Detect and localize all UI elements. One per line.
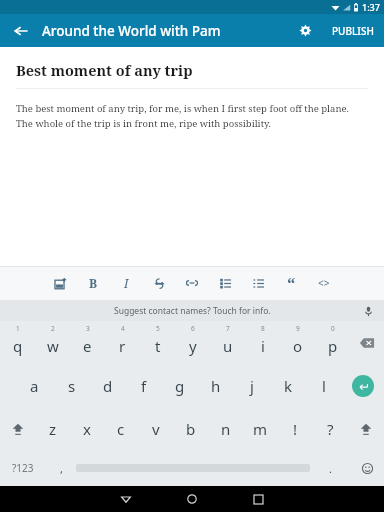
staticText: 3 bbox=[86, 324, 90, 333]
staticText: x bbox=[83, 419, 91, 439]
button[interactable]: 5 bbox=[140, 321, 175, 364]
staticText: 9 bbox=[296, 324, 300, 333]
button[interactable]: Shift bbox=[348, 407, 384, 450]
button[interactable]: Enter bbox=[342, 364, 384, 407]
button[interactable]: . bbox=[310, 450, 350, 486]
button[interactable]: g bbox=[162, 364, 198, 407]
button[interactable]: k bbox=[270, 364, 306, 407]
button[interactable]: j bbox=[234, 364, 270, 407]
staticText: d bbox=[103, 376, 113, 396]
button[interactable]: Link bbox=[180, 271, 204, 295]
button[interactable]: PUBLISH bbox=[322, 14, 384, 47]
staticText: v bbox=[152, 419, 160, 439]
button[interactable]: v bbox=[138, 407, 173, 450]
button[interactable]: Back bbox=[104, 486, 148, 512]
staticText: 6 bbox=[191, 324, 195, 333]
button[interactable]: Voice input bbox=[360, 303, 376, 319]
staticText: t bbox=[155, 336, 161, 356]
button[interactable]: Delete bbox=[350, 321, 384, 364]
button[interactable]: Numbered list bbox=[246, 271, 270, 295]
button[interactable]: d bbox=[90, 364, 126, 407]
button[interactable]: c bbox=[104, 407, 138, 450]
button[interactable]: b bbox=[173, 407, 208, 450]
staticText: f bbox=[141, 376, 147, 396]
staticText: 1 bbox=[16, 324, 20, 333]
staticText: m bbox=[253, 419, 268, 439]
button[interactable]: Shift bbox=[0, 407, 36, 450]
button[interactable]: ? bbox=[313, 407, 348, 450]
button[interactable]: 6 bbox=[175, 321, 210, 364]
button[interactable]: 8 bbox=[245, 321, 280, 364]
staticText: w bbox=[47, 336, 59, 356]
staticText: l bbox=[322, 376, 326, 396]
button[interactable]: Strikethrough bbox=[147, 271, 171, 295]
button[interactable]: , bbox=[46, 450, 76, 486]
button[interactable]: a bbox=[16, 364, 53, 407]
button[interactable]: Best moment of any trip bbox=[16, 60, 193, 80]
button[interactable]: Home bbox=[170, 486, 214, 512]
button[interactable]: h bbox=[198, 364, 234, 407]
staticText: 5 bbox=[156, 324, 160, 333]
button[interactable]: Space bbox=[76, 450, 310, 486]
staticText: e bbox=[83, 336, 92, 356]
button[interactable]: Add image bbox=[48, 271, 72, 295]
staticText: , bbox=[60, 461, 63, 476]
button[interactable]: 4 bbox=[105, 321, 140, 364]
button[interactable]: Recent apps bbox=[236, 486, 280, 512]
staticText: p bbox=[328, 336, 338, 356]
staticText: z bbox=[49, 419, 57, 439]
staticText: h bbox=[211, 376, 221, 396]
staticText: c bbox=[117, 419, 125, 439]
staticText: ? bbox=[327, 419, 334, 439]
staticText: n bbox=[221, 419, 231, 439]
staticText: I bbox=[124, 275, 129, 291]
staticText: 8 bbox=[261, 324, 265, 333]
button[interactable]: 3 bbox=[70, 321, 105, 364]
staticText: ! bbox=[293, 419, 298, 439]
button[interactable]: The best moment of any trip, for me, is … bbox=[16, 102, 368, 130]
button[interactable]: 7 bbox=[210, 321, 245, 364]
button[interactable]: x bbox=[70, 407, 104, 450]
button[interactable]: 9 bbox=[280, 321, 315, 364]
staticText: B bbox=[89, 275, 98, 291]
button[interactable]: Suggest contact names? Touch for info. bbox=[114, 305, 271, 317]
staticText: ?123 bbox=[12, 461, 34, 475]
button[interactable]: n bbox=[208, 407, 243, 450]
staticText: o bbox=[293, 336, 303, 356]
button[interactable]: s bbox=[53, 364, 90, 407]
staticText: Around the World with Pam bbox=[42, 22, 221, 40]
button[interactable]: f bbox=[126, 364, 162, 407]
staticText: g bbox=[175, 376, 185, 396]
staticText: 0 bbox=[331, 324, 335, 333]
button[interactable]: ?123 bbox=[0, 450, 46, 486]
button[interactable]: Quote bbox=[279, 271, 303, 295]
button[interactable]: l bbox=[306, 364, 342, 407]
staticText: 1:37 bbox=[362, 1, 380, 13]
button[interactable]: Bulleted list bbox=[213, 271, 237, 295]
button[interactable]: Italic bbox=[114, 271, 138, 295]
button[interactable]: Bold bbox=[81, 271, 105, 295]
staticText: j bbox=[250, 376, 254, 396]
staticText: <> bbox=[318, 276, 330, 290]
staticText: b bbox=[186, 419, 196, 439]
button[interactable]: Emoji bbox=[350, 450, 384, 486]
staticText: s bbox=[68, 376, 76, 396]
staticText: 2 bbox=[51, 324, 55, 333]
button[interactable]: m bbox=[243, 407, 278, 450]
staticText: 7 bbox=[226, 324, 230, 333]
staticText: i bbox=[261, 336, 265, 356]
button[interactable]: 2 bbox=[35, 321, 70, 364]
staticText: PUBLISH bbox=[332, 24, 374, 38]
button[interactable]: ! bbox=[278, 407, 313, 450]
button[interactable]: 0 bbox=[315, 321, 350, 364]
staticText: q bbox=[13, 336, 23, 356]
button[interactable]: z bbox=[36, 407, 70, 450]
staticText: r bbox=[119, 336, 126, 356]
button[interactable]: Settings bbox=[288, 14, 322, 47]
button[interactable]: Code bbox=[312, 271, 336, 295]
staticText: “ bbox=[287, 272, 296, 295]
button[interactable]: Back bbox=[0, 14, 42, 47]
staticText: 4 bbox=[121, 324, 125, 333]
staticText: y bbox=[189, 336, 197, 356]
button[interactable]: 1 bbox=[0, 321, 35, 364]
